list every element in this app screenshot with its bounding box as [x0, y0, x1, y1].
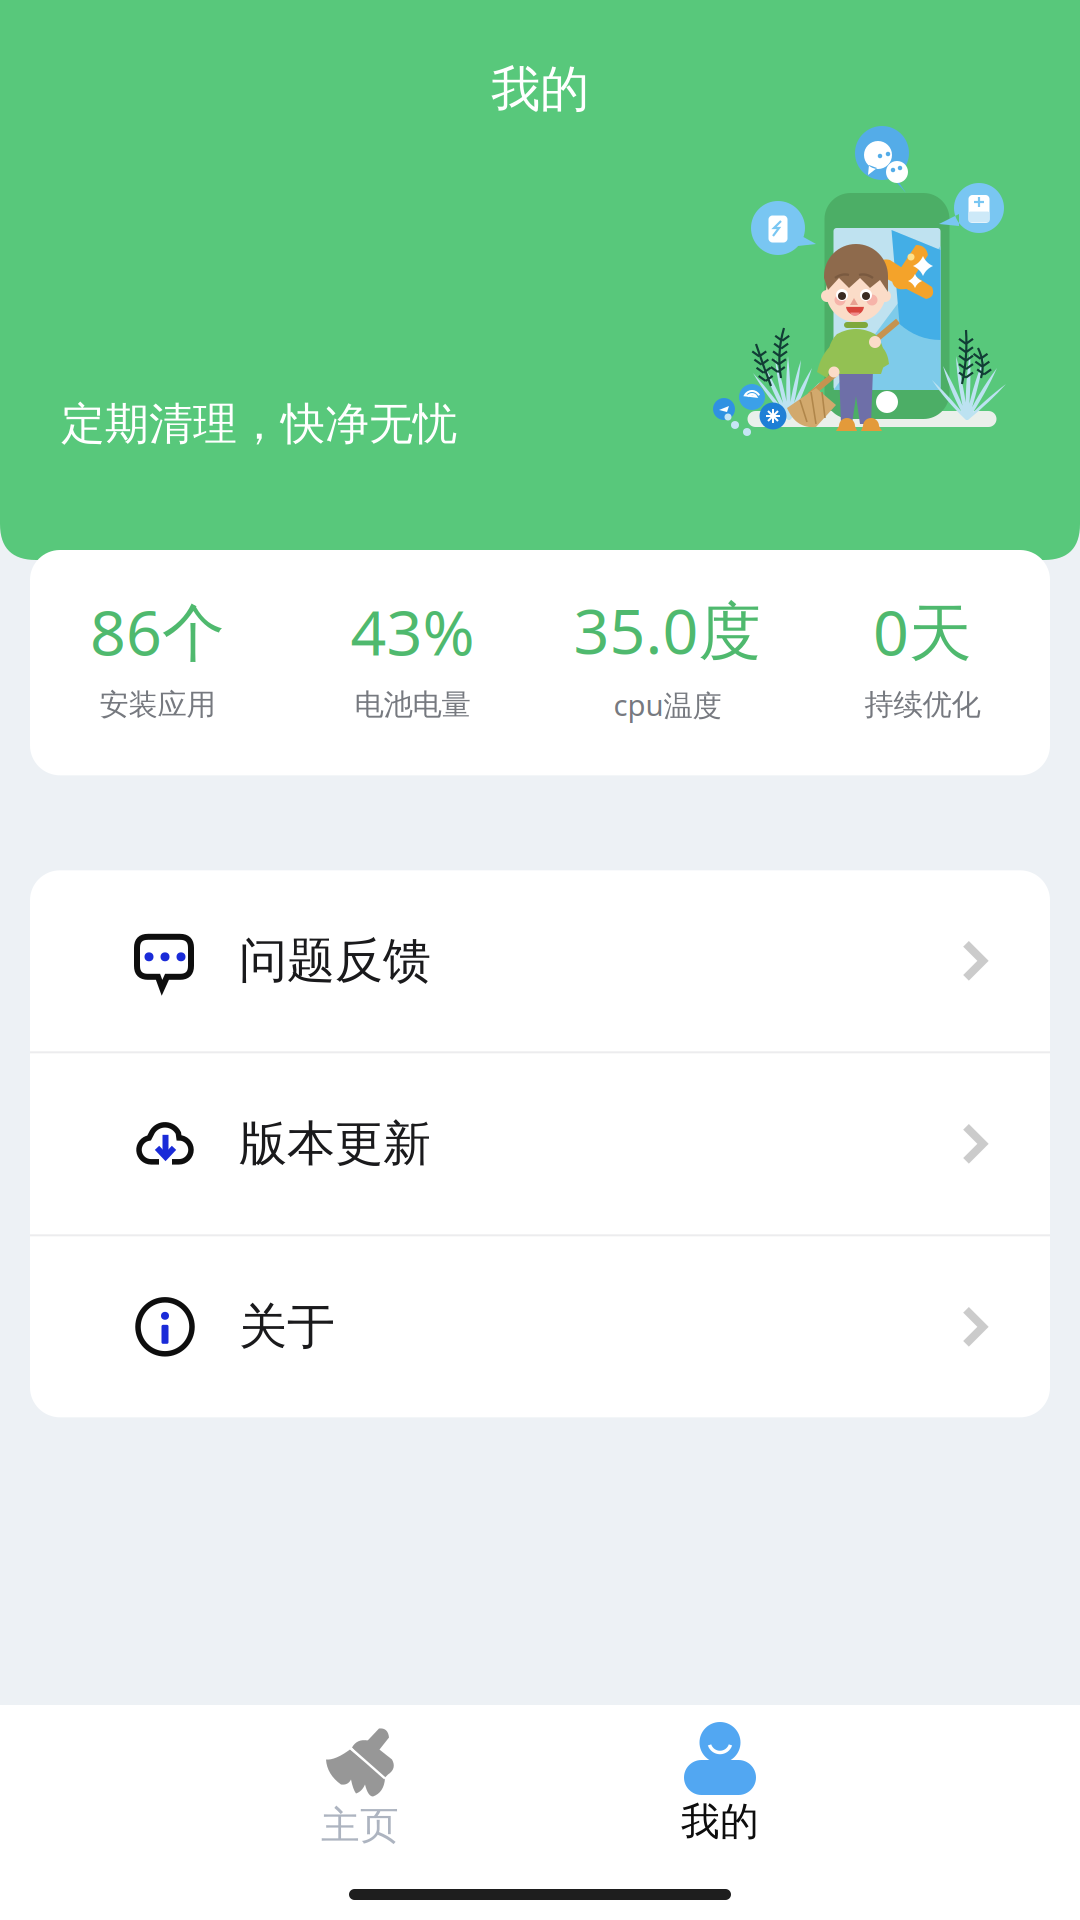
- staticText: 43%: [350, 589, 474, 673]
- staticText: 我的: [491, 59, 589, 120]
- staticText: 0天: [873, 589, 972, 673]
- staticText: 我的: [681, 1798, 759, 1845]
- button[interactable]: 我的: [540, 1705, 900, 1920]
- button[interactable]: 版本更新: [30, 1053, 1050, 1234]
- staticText: 定期清理，快净无忧: [61, 397, 457, 451]
- staticText: 版本更新: [239, 1114, 431, 1173]
- staticText: 问题反馈: [239, 931, 431, 990]
- button[interactable]: 问题反馈: [30, 870, 1050, 1051]
- staticText: 主页: [321, 1802, 399, 1849]
- staticText: 35.0度: [573, 588, 761, 671]
- staticText: 电池电量: [354, 687, 470, 723]
- staticText: 关于: [239, 1297, 335, 1356]
- button[interactable]: 主页: [180, 1705, 540, 1920]
- staticText: 持续优化: [864, 687, 980, 723]
- staticText: cpu温度: [613, 685, 721, 724]
- button[interactable]: 关于: [30, 1236, 1050, 1417]
- staticText: 安装应用: [99, 687, 215, 723]
- staticText: 86个: [90, 589, 225, 673]
